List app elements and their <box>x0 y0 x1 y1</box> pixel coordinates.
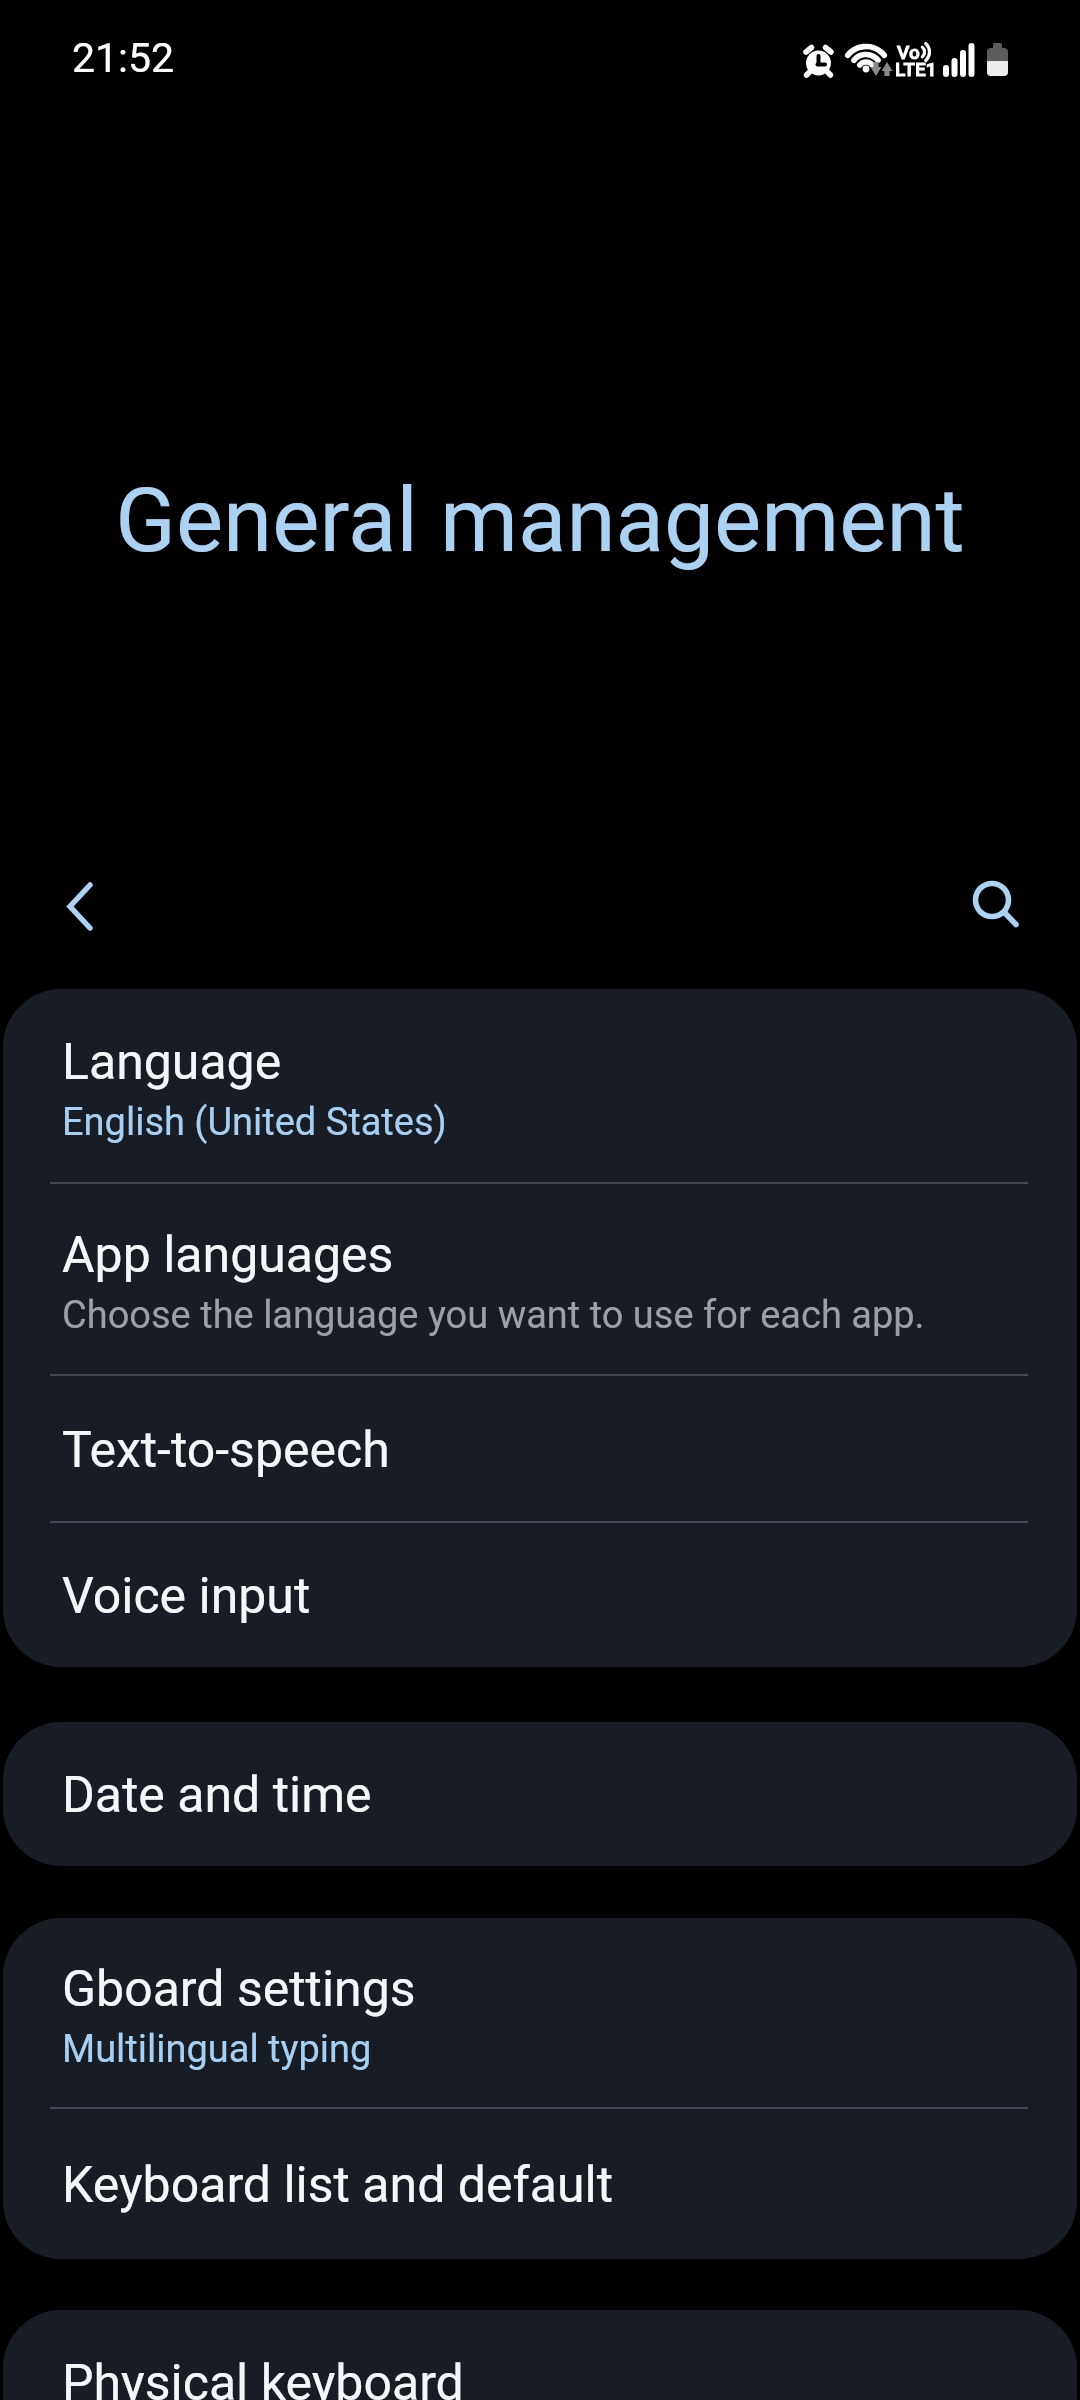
button[interactable]: Text-to-speech <box>3 1376 1077 1521</box>
staticText: Voice input <box>62 1567 311 1626</box>
button[interactable]: Language <box>3 989 1077 1182</box>
button[interactable]: Voice input <box>3 1523 1077 1667</box>
staticText: Text-to-speech <box>62 1421 390 1480</box>
button[interactable]: Search <box>952 871 1040 959</box>
staticText: 21:52 <box>72 34 175 82</box>
staticText: Vo <box>897 41 920 63</box>
button[interactable]: Keyboard list and default <box>3 2109 1077 2259</box>
button[interactable]: Gboard settings <box>3 1918 1077 2107</box>
staticText: English (United States) <box>62 1100 447 1145</box>
staticText: App languages <box>62 1226 394 1285</box>
staticText: General management <box>115 468 965 572</box>
button[interactable]: App languages <box>3 1184 1077 1374</box>
staticText: Multilingual typing <box>62 2027 372 2072</box>
staticText: Physical keyboard <box>62 2354 464 2400</box>
button[interactable]: Back <box>38 871 126 959</box>
staticText: Language <box>62 1033 282 1092</box>
staticText: Keyboard list and default <box>62 2156 614 2215</box>
button[interactable]: Physical keyboard <box>3 2310 1077 2400</box>
button[interactable]: Date and time <box>3 1722 1077 1866</box>
staticText: LTE1 <box>895 58 937 80</box>
staticText: Choose the language you want to use for … <box>62 1293 925 1338</box>
staticText: Date and time <box>62 1766 372 1825</box>
staticText: Gboard settings <box>62 1960 416 2019</box>
